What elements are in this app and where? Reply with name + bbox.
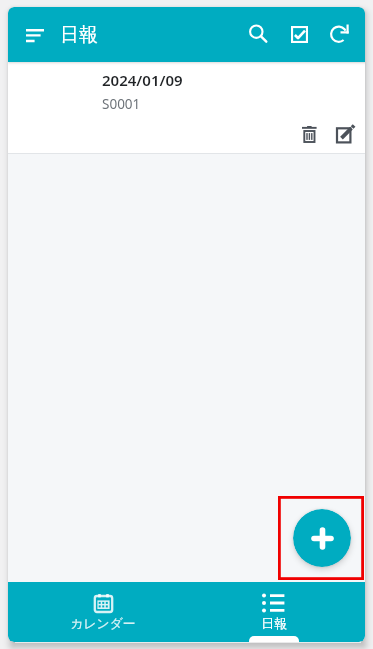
button[interactable]: Edit <box>329 117 363 151</box>
button[interactable]: カレンダー <box>18 584 188 642</box>
staticText: 2024/01/09 <box>102 70 183 90</box>
button[interactable]: Select all <box>279 14 320 55</box>
button[interactable]: 2024/01/09 <box>8 62 365 154</box>
staticText: 日報 <box>261 616 287 632</box>
button[interactable]: Refresh <box>320 14 361 55</box>
staticText: 日報 <box>60 23 98 47</box>
staticText: S0001 <box>102 95 141 113</box>
button[interactable]: Search <box>238 14 279 55</box>
button[interactable]: Delete <box>293 117 327 151</box>
button[interactable]: Add <box>293 509 351 567</box>
button[interactable]: Sort <box>16 16 54 54</box>
staticText: カレンダー <box>70 616 136 632</box>
button[interactable]: 日報 <box>188 584 359 642</box>
